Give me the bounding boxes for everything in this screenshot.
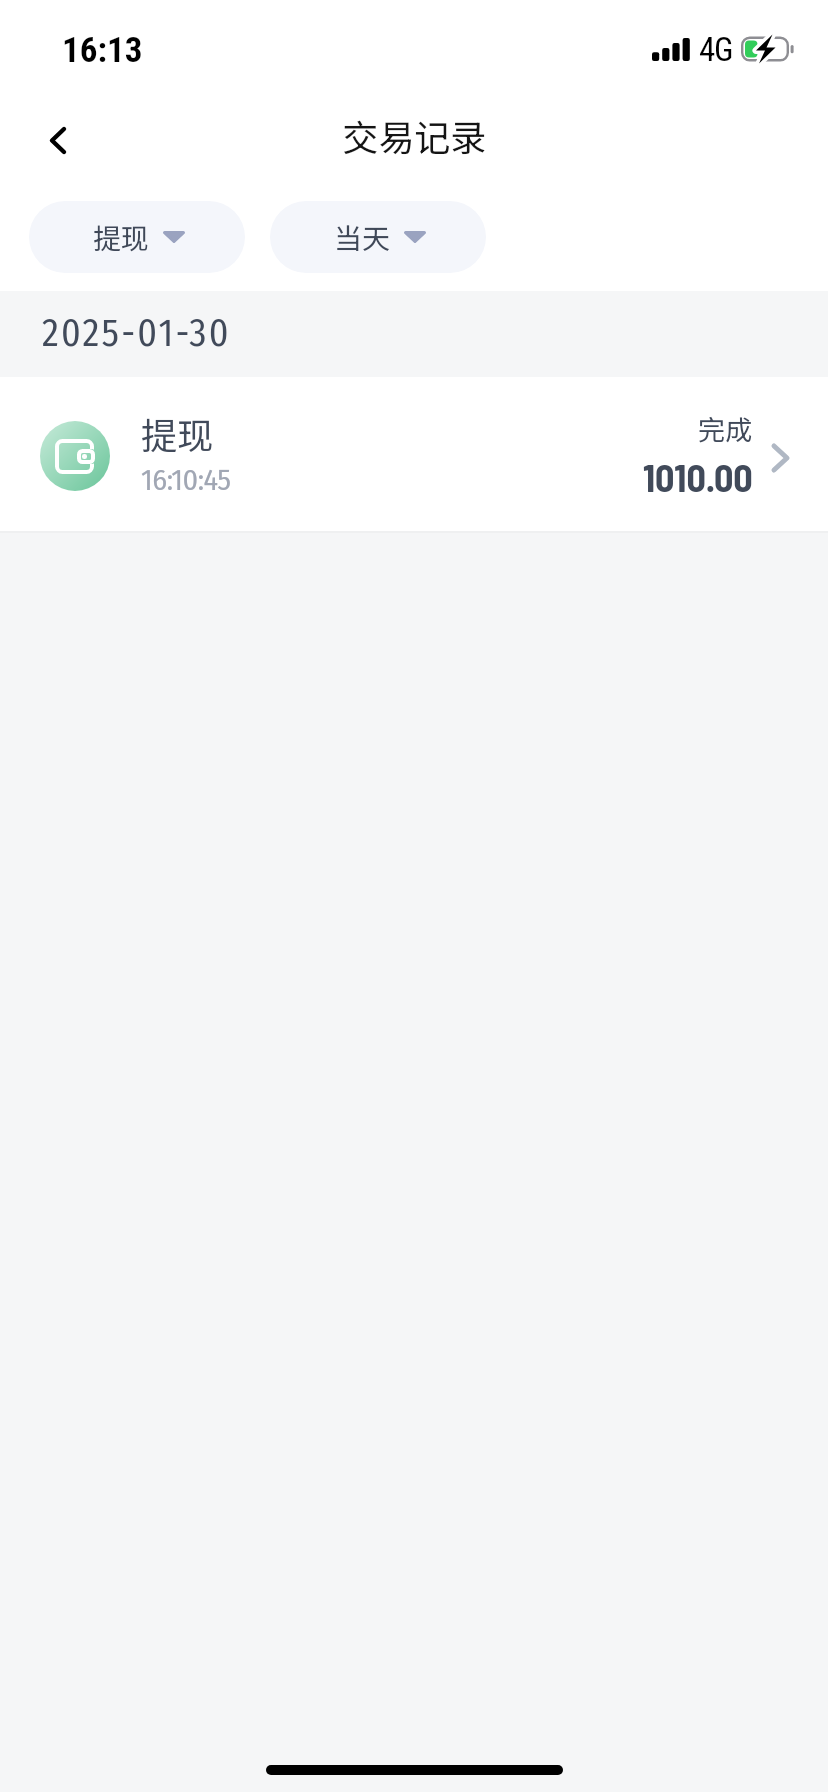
button[interactable]: Back <box>10 92 106 188</box>
staticText: 交易记录 <box>342 109 487 161</box>
button[interactable]: 提现 <box>0 377 828 531</box>
staticText: 提现 <box>93 217 150 258</box>
staticText: 当天 <box>334 217 391 258</box>
staticText: 16:10:45 <box>141 462 231 498</box>
staticText: 4G <box>699 30 733 69</box>
staticText: 完成 <box>698 409 752 448</box>
staticText: 提现 <box>141 407 214 459</box>
staticText: 1010.00 <box>643 454 753 500</box>
staticText: 2025-01-30 <box>42 310 231 356</box>
staticText: 16:13 <box>62 30 143 71</box>
button[interactable]: 提现 <box>29 201 245 273</box>
button[interactable]: 当天 <box>270 201 486 273</box>
